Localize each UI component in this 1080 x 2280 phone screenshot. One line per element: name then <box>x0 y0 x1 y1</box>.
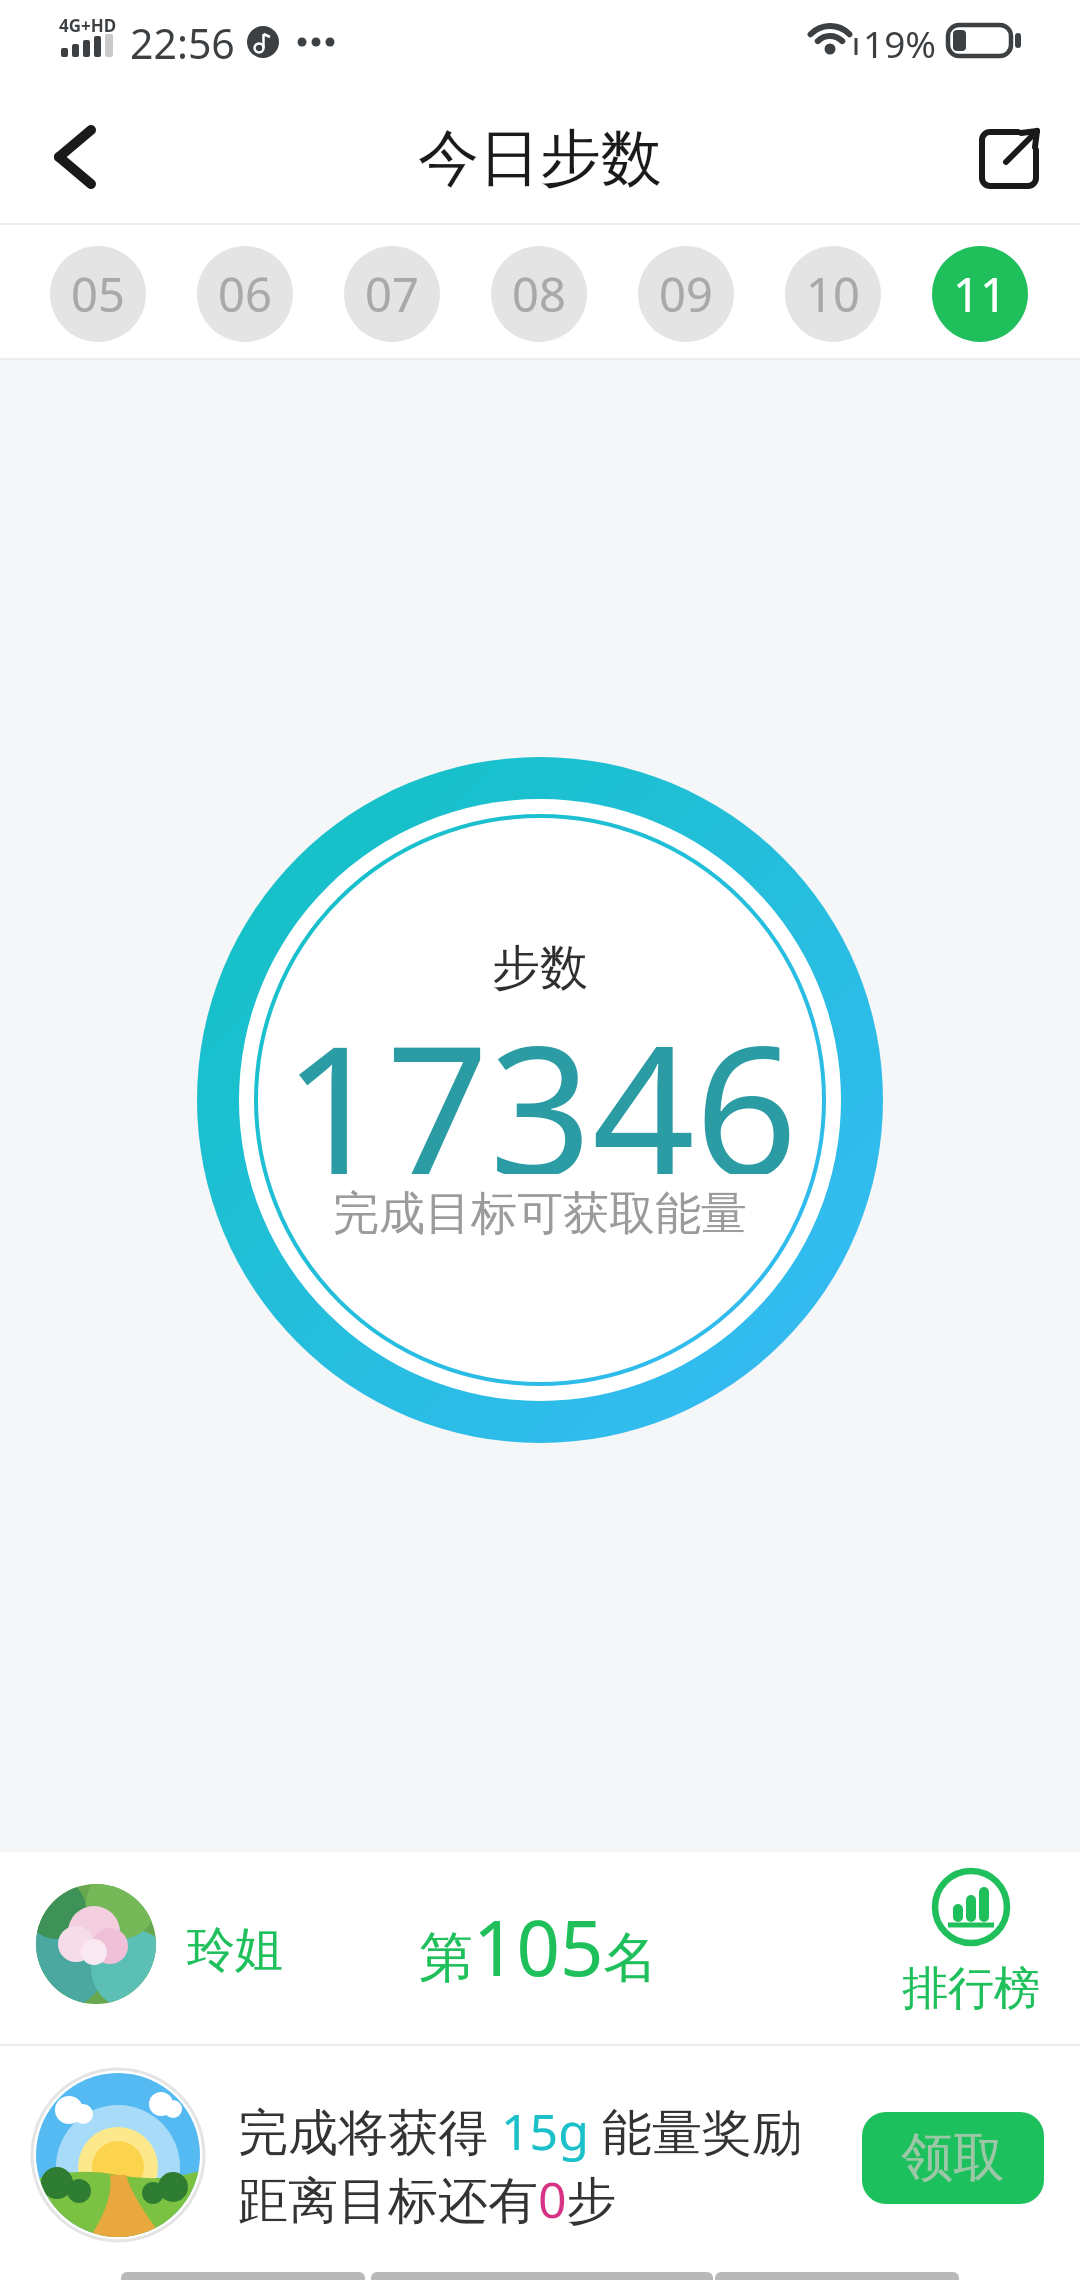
staticText: 19% <box>863 18 937 68</box>
staticText: 完成目标可获取能量 <box>333 1185 747 1243</box>
staticText: 完成将获得 15g 能量奖励 <box>238 2097 802 2165</box>
staticText: 步数 <box>492 938 588 998</box>
button[interactable]: 08 <box>491 246 587 342</box>
button[interactable]: 09 <box>638 246 734 342</box>
button[interactable] <box>30 112 120 202</box>
staticText: 06 <box>218 262 272 326</box>
staticText: 07 <box>365 262 419 326</box>
button[interactable]: 11 <box>932 246 1028 342</box>
staticText: 09 <box>659 262 713 326</box>
staticText: 05 <box>71 262 125 326</box>
staticText: 领取 <box>901 2125 1005 2191</box>
button[interactable]: 07 <box>344 246 440 342</box>
staticText: 10 <box>806 262 860 326</box>
button[interactable]: 玲姐 <box>0 1852 1080 2044</box>
button[interactable]: 领取 <box>862 2112 1044 2204</box>
staticText: 距离目标还有0步 <box>238 2165 617 2233</box>
button[interactable]: 06 <box>197 246 293 342</box>
staticText: 08 <box>512 262 566 326</box>
button[interactable]: 05 <box>50 246 146 342</box>
staticText: 11 <box>953 262 1007 326</box>
staticText: 排行榜 <box>902 1960 1040 2016</box>
staticText: 22:56 <box>130 15 235 71</box>
staticText: 今日步数 <box>418 120 662 197</box>
staticText: 4G+HD <box>59 14 117 37</box>
button[interactable]: 10 <box>785 246 881 342</box>
staticText: 玲姐 <box>187 1920 283 1980</box>
button[interactable] <box>960 110 1056 200</box>
staticText: 第105名 <box>419 1895 658 1999</box>
staticText: 17346 <box>283 984 798 1174</box>
